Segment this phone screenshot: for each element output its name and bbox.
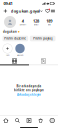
button[interactable]: Reels (23, 116, 35, 125)
staticText: Profili paylaş (33, 37, 52, 40)
button[interactable]: Yeni (2, 44, 13, 56)
staticText: gönderi (20, 24, 26, 26)
button[interactable]: Create (2, 8, 8, 14)
staticText: 128 (33, 18, 39, 24)
staticText: Hikayem (17, 54, 23, 56)
button[interactable]: Posts (0, 57, 29, 64)
staticText: takip (48, 24, 51, 26)
button[interactable]: 128 (29, 18, 43, 26)
staticText: 4 (22, 18, 24, 24)
button[interactable]: dogukan.goyal (11, 7, 42, 15)
staticText: takipçi (34, 24, 38, 26)
button[interactable]: Profile photo (4, 16, 16, 28)
button[interactable]: Profili düzenle (2, 36, 28, 41)
staticText: Yeni (6, 54, 9, 56)
button[interactable]: Search (12, 116, 23, 125)
button[interactable]: Profile (46, 116, 58, 125)
button[interactable]: Tagged (29, 57, 58, 64)
staticText: dogukan (3, 30, 17, 33)
button[interactable]: Home (0, 116, 12, 125)
staticText: Bir arkadaşınızla (16, 84, 41, 88)
button[interactable]: 4 (16, 18, 29, 26)
staticText: birlikte anı paylaşın (14, 88, 44, 92)
button[interactable]: Hikayem (14, 44, 25, 56)
staticText: Arkadaş ekleyin (17, 93, 41, 96)
button[interactable]: Profili paylaş (30, 36, 55, 41)
staticText: 09:41 (3, 1, 12, 6)
button[interactable]: Arkadaş ekleyin (17, 92, 41, 96)
staticText: 189 (46, 18, 52, 24)
button[interactable]: Activity (45, 9, 50, 13)
button[interactable]: Menu (50, 9, 55, 13)
staticText: Profili düzenle (4, 37, 26, 40)
staticText: dogukan.goyal (11, 8, 40, 14)
button[interactable]: 189 (43, 18, 56, 26)
button[interactable]: Shop (35, 116, 46, 125)
